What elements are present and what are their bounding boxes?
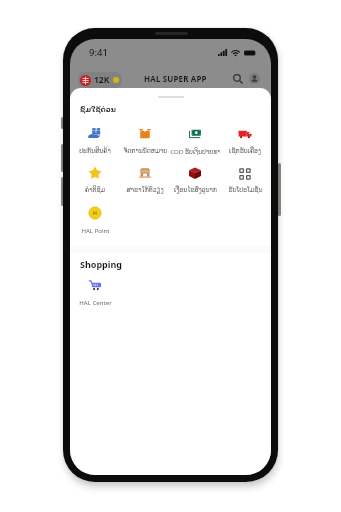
button[interactable]: ເງື່ອນໄຂສົ່ງລຸນາກ bbox=[170, 163, 220, 193]
staticText: ປະກັນສິນຄ້າ bbox=[79, 147, 111, 154]
button[interactable]: Search bbox=[230, 71, 245, 86]
staticText: ຈັດການນັດຫມາຍ bbox=[123, 147, 168, 154]
button[interactable]: HAL Point bbox=[70, 203, 120, 234]
button[interactable]: ຄຳຕິຊົມ bbox=[70, 163, 120, 193]
button[interactable]: ສາຂາໃກ້ຕົວຽງ bbox=[120, 163, 170, 193]
staticText: HAL SUPER APP bbox=[144, 74, 207, 85]
button[interactable]: ປະກັນສິນຄ້າ bbox=[70, 124, 120, 154]
staticText: ຮັບໂປຣໂມຊັ່ນ bbox=[228, 186, 263, 193]
staticText: ສາຂາໃກ້ຕົວຽງ bbox=[126, 186, 164, 193]
staticText: COD ຮັບເງິນປາຍທາງ bbox=[170, 147, 220, 155]
staticText: HAL Center bbox=[79, 298, 112, 306]
button[interactable]: ຈັດການນັດຫມາຍ bbox=[120, 124, 170, 154]
staticText: HAL Point bbox=[81, 226, 110, 234]
button[interactable]: ຮັບໂປຣໂມຊັ່ນ bbox=[220, 163, 270, 193]
button[interactable]: 12K bbox=[78, 72, 122, 88]
button[interactable]: HAL Center bbox=[70, 275, 120, 306]
button[interactable]: ເຊັກຮັບເຄື່ອງ bbox=[220, 124, 270, 154]
staticText: 9:41 bbox=[89, 46, 108, 59]
staticText: 12K bbox=[94, 74, 110, 86]
staticText: ຄຳຕິຊົມ bbox=[85, 186, 105, 193]
staticText: ເງື່ອນໄຂສົ່ງລຸນາກ bbox=[174, 186, 217, 193]
button[interactable]: COD ຮັບເງິນປາຍທາງ bbox=[170, 124, 220, 155]
staticText: Shopping bbox=[80, 258, 123, 270]
staticText: ເຊັກຮັບເຄື່ອງ bbox=[229, 147, 261, 154]
button[interactable]: Profile bbox=[247, 71, 262, 86]
staticText: ຊົມໃຊ້ດ່ວນ bbox=[80, 106, 116, 114]
